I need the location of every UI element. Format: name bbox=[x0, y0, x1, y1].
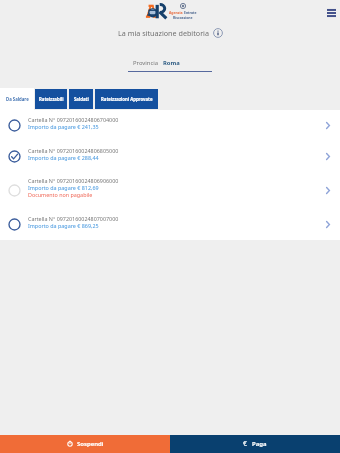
staticText: Sospendi bbox=[77, 440, 104, 448]
staticText: Importo da pagare € 869,25 bbox=[28, 222, 99, 229]
staticText: Importo da pagare € 288,44 bbox=[28, 154, 99, 161]
staticText: La mia situazione debitoria bbox=[118, 28, 210, 38]
button[interactable]: Cartella N° 09720160024806805000 bbox=[0, 141, 340, 172]
button[interactable]: La mia situazione debitoria bbox=[118, 28, 223, 38]
staticText: Cartella N° 09720160024806704000 bbox=[28, 116, 119, 123]
button[interactable]: € bbox=[170, 435, 340, 453]
staticText: Importo da pagare € 812,69 bbox=[28, 184, 99, 191]
button[interactable]: Sospendi bbox=[0, 435, 170, 453]
button[interactable]: Saldati bbox=[69, 89, 93, 109]
staticText: Rateizzabili bbox=[39, 96, 64, 102]
staticText: Entrate bbox=[184, 10, 197, 15]
staticText: Importo da pagare € 241,35 bbox=[28, 123, 99, 130]
staticText: Riscossione bbox=[173, 15, 193, 20]
button[interactable]: Cartella N° 09720160024806704000 bbox=[0, 110, 340, 141]
staticText: Cartella N° 09720160024806805000 bbox=[28, 147, 119, 154]
staticText: Agenzia bbox=[169, 10, 183, 15]
staticText: Provincia bbox=[133, 59, 159, 67]
staticText: Cartella N° 09720160024806906000 bbox=[28, 177, 119, 184]
button[interactable]: Rateizzazioni Approvate bbox=[95, 89, 158, 109]
staticText: Da Saldare bbox=[6, 96, 29, 102]
staticText: Cartella N° 09720160024807007000 bbox=[28, 215, 119, 222]
button[interactable]: Menu bbox=[323, 5, 340, 21]
staticText: Roma bbox=[163, 59, 180, 67]
button[interactable]: Cartella N° 09720160024806906000 bbox=[0, 172, 340, 209]
staticText: Paga bbox=[252, 440, 267, 448]
staticText: Rateizzazioni Approvate bbox=[101, 96, 153, 102]
staticText: Saldati bbox=[74, 96, 89, 102]
staticText: Documento non pagabile bbox=[28, 191, 93, 198]
other: Info bbox=[213, 28, 223, 38]
button[interactable]: Da Saldare bbox=[0, 88, 34, 110]
button[interactable]: Rateizzabili bbox=[35, 89, 67, 109]
staticText: € bbox=[243, 439, 248, 449]
button[interactable]: Provincia bbox=[128, 59, 212, 67]
button[interactable]: Cartella N° 09720160024807007000 bbox=[0, 209, 340, 240]
